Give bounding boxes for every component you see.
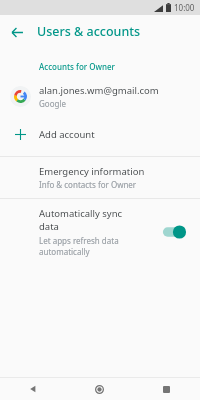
button[interactable]: Back [6, 21, 28, 43]
staticText: data [39, 220, 59, 233]
staticText: Add account [39, 128, 95, 141]
staticText: alan.jones.wm@gmail.com [39, 84, 159, 97]
button[interactable]: Automatically sync data toggle [162, 222, 192, 242]
button[interactable]: Back [0, 378, 66, 400]
staticText: Users & accounts [37, 23, 141, 40]
button[interactable]: alan.jones.wm@gmail.com [0, 81, 200, 112]
staticText: Info & contacts for Owner [39, 179, 137, 190]
button[interactable]: Add account [0, 120, 200, 149]
button[interactable]: Automatically sync [0, 199, 200, 265]
staticText: Let apps refresh data [39, 235, 119, 246]
staticText: automatically [39, 246, 90, 257]
staticText: Google [39, 98, 66, 109]
staticText: Accounts for Owner [39, 61, 115, 72]
button[interactable]: Home [66, 378, 133, 400]
staticText: Automatically sync [39, 207, 123, 220]
button[interactable]: Recent apps [133, 378, 200, 400]
staticText: 10:00 [174, 2, 195, 13]
staticText: Emergency information [39, 165, 145, 178]
button[interactable]: Emergency information [0, 157, 200, 198]
